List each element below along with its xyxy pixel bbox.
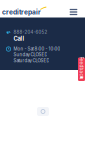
button[interactable]: Feedback [78,57,85,81]
staticText: Mon - Sat 8:00 - 10:00 [13,46,60,51]
staticText: Sunday CLOSED [13,52,47,57]
staticText: 888-204-6052 [13,29,47,35]
button[interactable]: Menu [67,7,80,17]
staticText: Call [13,35,24,42]
staticText: Feedback [70,65,85,70]
staticText: creditrepair [2,8,41,16]
button[interactable]: CreditRepair.com home [0,7,48,17]
staticText: Saturday CLOSED [13,58,49,63]
button[interactable]: Call 888-204-6052 [0,29,47,42]
